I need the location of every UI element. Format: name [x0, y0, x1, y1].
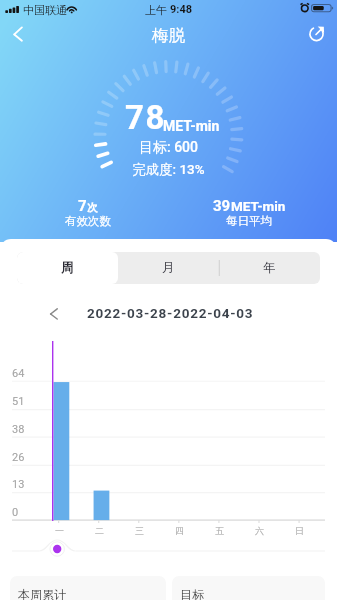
- staticText: 年: [263, 260, 276, 276]
- staticText: 9:48: [170, 3, 193, 16]
- staticText: 78: [125, 98, 167, 137]
- button[interactable]: Previous week: [38, 305, 68, 327]
- button[interactable]: 目标: [172, 576, 325, 600]
- staticText: 四: [175, 525, 184, 536]
- staticText: 7: [78, 197, 87, 215]
- staticText: 五: [215, 525, 224, 536]
- staticText: 梅脱: [0, 25, 337, 46]
- button[interactable]: Share: [297, 22, 337, 46]
- staticText: 目标: [180, 587, 204, 600]
- staticText: 目标: 600: [0, 139, 337, 157]
- staticText: 2022-03-28-2022-04-03: [87, 305, 254, 321]
- staticText: 三: [135, 525, 144, 536]
- staticText: 有效次数: [18, 214, 158, 228]
- staticText: 38: [12, 423, 25, 436]
- staticText: 上午: [145, 3, 170, 17]
- staticText: 中国联通: [23, 3, 67, 17]
- staticText: 六: [255, 525, 264, 536]
- button[interactable]: 年: [219, 252, 320, 284]
- staticText: MET-min: [231, 198, 286, 214]
- staticText: 26: [12, 451, 25, 464]
- staticText: 0: [12, 506, 19, 519]
- staticText: 64: [12, 367, 25, 380]
- button[interactable]: 周: [17, 252, 118, 284]
- staticText: 日: [295, 525, 304, 536]
- button[interactable]: 月: [118, 252, 219, 284]
- staticText: 每日平均: [179, 214, 319, 228]
- staticText: MET-min: [163, 118, 220, 134]
- staticText: 月: [162, 260, 175, 276]
- button[interactable]: 本周累计: [10, 576, 166, 600]
- staticText: 二: [95, 525, 104, 536]
- staticText: 13: [12, 478, 25, 491]
- button[interactable]: Back: [0, 22, 40, 46]
- staticText: 本周累计: [18, 587, 66, 600]
- staticText: 次: [87, 201, 98, 214]
- staticText: 一: [55, 525, 64, 536]
- staticText: 完成度: 13%: [0, 161, 337, 178]
- staticText: 周: [61, 260, 74, 276]
- staticText: 39: [213, 197, 231, 215]
- staticText: 51: [12, 395, 25, 408]
